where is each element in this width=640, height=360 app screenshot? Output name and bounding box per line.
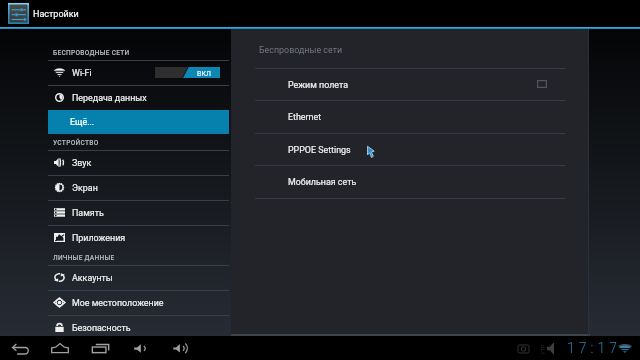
button[interactable]: Volume up (169, 338, 191, 358)
button[interactable] (48, 110, 229, 134)
staticText: ВКЛ (197, 70, 212, 78)
button[interactable] (0, 291, 229, 315)
staticText: ЛИЧНЫЕ ДАННЫЕ (53, 254, 115, 262)
staticText: Передача данных (72, 93, 147, 103)
staticText: 17:17 (567, 340, 622, 356)
staticText: Ещё... (70, 117, 95, 127)
staticText: Мое местоположение (72, 298, 164, 308)
staticText: FTP (540, 344, 545, 354)
button[interactable] (231, 69, 589, 101)
staticText: Память (72, 208, 104, 218)
staticText: Режим полета (288, 80, 348, 90)
staticText: Беспроводные сети (259, 45, 343, 55)
button[interactable] (0, 61, 229, 85)
button[interactable] (0, 266, 229, 290)
staticText: PPPOE Settings (288, 145, 351, 155)
staticText: Экран (72, 183, 98, 193)
staticText: БЕСПРОВОДНЫЕ СЕТИ (53, 49, 130, 57)
staticText: Мобильная сеть (288, 177, 357, 187)
button[interactable] (155, 67, 220, 78)
staticText: Безопасность (72, 323, 131, 333)
button[interactable] (0, 86, 229, 110)
button[interactable] (231, 134, 589, 166)
button[interactable] (0, 226, 229, 250)
button[interactable]: Home (47, 339, 73, 357)
staticText: УСТРОЙСТВО (53, 139, 99, 147)
button[interactable] (0, 316, 229, 340)
staticText: Аккаунты (72, 273, 113, 283)
button[interactable]: Screenshot (518, 345, 529, 353)
button[interactable]: Recent apps (88, 340, 113, 357)
staticText: Звук (72, 158, 92, 168)
button[interactable] (0, 201, 229, 225)
staticText: Приложения (72, 233, 126, 243)
button[interactable] (0, 151, 229, 175)
staticText: Ethernet (288, 112, 322, 122)
button[interactable] (231, 101, 589, 133)
button[interactable] (0, 176, 229, 200)
button[interactable] (231, 166, 589, 198)
button[interactable]: Back (8, 340, 33, 358)
staticText: Настройки (33, 9, 79, 20)
button[interactable]: Volume down (130, 340, 149, 357)
button[interactable]: Настройки (4, 0, 92, 27)
staticText: Wi-Fi (72, 68, 92, 78)
